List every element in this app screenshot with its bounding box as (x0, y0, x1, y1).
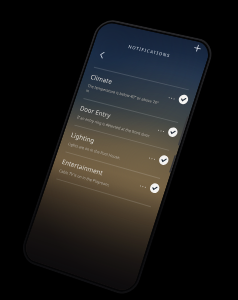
button[interactable]: Lighting (58, 123, 177, 180)
staticText: NOTIFICATIONS (128, 43, 171, 58)
button[interactable]: Add (192, 43, 203, 54)
button[interactable]: Enabled, Entertainment (149, 182, 161, 194)
button[interactable]: Door Entry (67, 96, 186, 152)
staticText: Cable TV is on in the Playroom. (58, 168, 111, 188)
button[interactable]: More options (136, 180, 149, 192)
button[interactable]: Enabled, Door Entry (167, 126, 179, 138)
staticText: Door Entry (79, 104, 113, 120)
button[interactable]: More options (146, 153, 158, 164)
button[interactable]: Climate (76, 65, 197, 124)
button[interactable]: Enabled, Climate (177, 94, 189, 105)
button[interactable]: More options (165, 92, 177, 103)
button[interactable]: Entertainment (49, 149, 168, 209)
staticText: Lights are on in the Pool House. (68, 141, 122, 160)
staticText: Lighting (70, 130, 96, 145)
staticText: If an entry ring is detected at the fron… (77, 114, 151, 138)
staticText: The temperature is below 40° or above 78… (85, 83, 162, 111)
staticText: Climate (89, 72, 114, 86)
staticText: Entertainment (61, 157, 104, 177)
button[interactable]: More options (155, 125, 167, 136)
button[interactable]: Enabled, Lighting (158, 154, 170, 166)
button[interactable]: Back (95, 48, 109, 62)
